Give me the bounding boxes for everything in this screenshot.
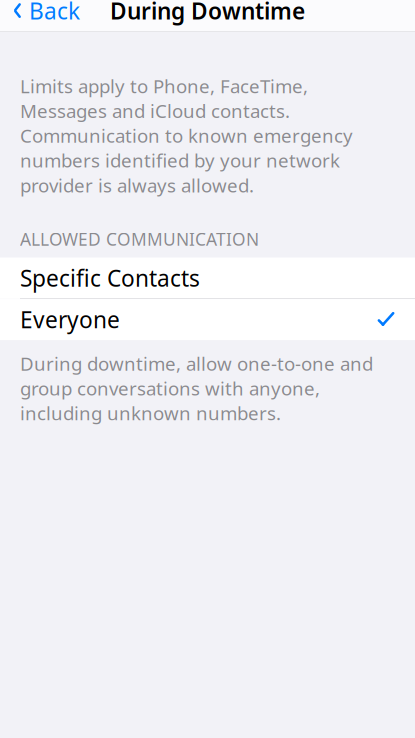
staticText: During Downtime xyxy=(110,0,305,26)
button[interactable]: Everyone xyxy=(0,299,415,340)
staticText: Everyone xyxy=(20,304,120,335)
staticText: Specific Contacts xyxy=(20,263,200,293)
button[interactable]: Specific Contacts xyxy=(0,257,415,298)
staticText: During downtime, allow one-to-one and gr… xyxy=(20,351,373,425)
button[interactable]: Back xyxy=(0,0,90,32)
staticText: ALLOWED COMMUNICATION xyxy=(20,227,259,250)
staticText: Limits apply to Phone, FaceTime, Message… xyxy=(20,74,353,198)
staticText: Back xyxy=(29,0,80,26)
